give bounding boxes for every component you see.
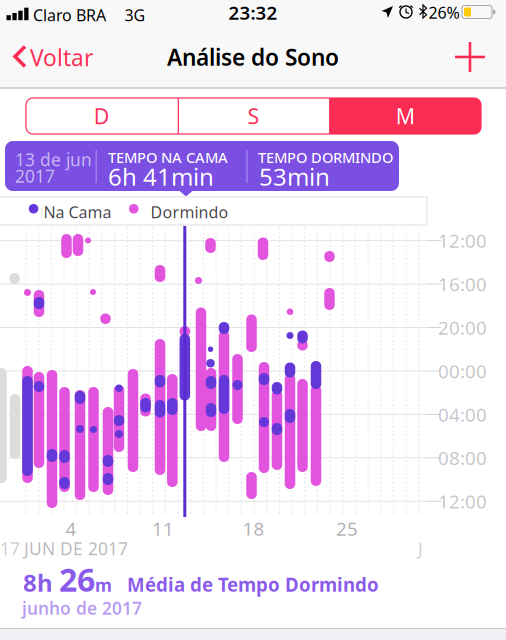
button[interactable]: M (329, 98, 481, 134)
staticText: m (95, 573, 112, 596)
button[interactable]: S (178, 98, 329, 134)
staticText: 13 de jun (15, 148, 92, 171)
staticText: Análise do Sono (167, 42, 339, 72)
staticText: 3G (124, 4, 145, 26)
staticText: 08:00 (438, 445, 487, 470)
staticText: 4 (65, 516, 76, 541)
button[interactable]: D (26, 98, 177, 134)
button[interactable]: Voltar (8, 31, 104, 81)
staticText: 17 (0, 537, 20, 560)
staticText: J (418, 537, 423, 560)
staticText: 11 (152, 516, 174, 541)
staticText: 25 (336, 516, 358, 541)
staticText: 26% (428, 2, 459, 23)
staticText: S (247, 102, 259, 130)
staticText: 8h (23, 566, 59, 598)
staticText: Voltar (30, 42, 93, 73)
staticText: 12:00 (438, 489, 487, 514)
staticText: Claro BRA (33, 4, 106, 26)
staticText: 26 (59, 558, 95, 600)
staticText: 00:00 (438, 359, 487, 383)
staticText: 12:00 (438, 228, 487, 253)
staticText: Na Cama (43, 201, 111, 223)
staticText: 23:32 (228, 0, 277, 25)
staticText: junho de 2017 (22, 596, 142, 619)
staticText: 6h 41min (108, 160, 214, 192)
staticText: Dormindo (150, 201, 228, 223)
staticText: JUN DE 2017 (24, 537, 128, 560)
staticText: TEMPO NA CAMA (108, 147, 228, 167)
staticText: M (396, 102, 415, 130)
staticText: 53min (259, 160, 330, 192)
staticText: Média de Tempo Dormindo (112, 572, 379, 597)
staticText: 2017 (15, 164, 55, 187)
button[interactable]: Adicionar (444, 31, 496, 81)
staticText: TEMPO DORMINDO (258, 147, 393, 167)
staticText: 16:00 (438, 272, 487, 296)
staticText: 20:00 (438, 315, 487, 340)
staticText: D (94, 102, 110, 130)
staticText: 18 (242, 516, 264, 541)
staticText: 04:00 (438, 402, 487, 427)
